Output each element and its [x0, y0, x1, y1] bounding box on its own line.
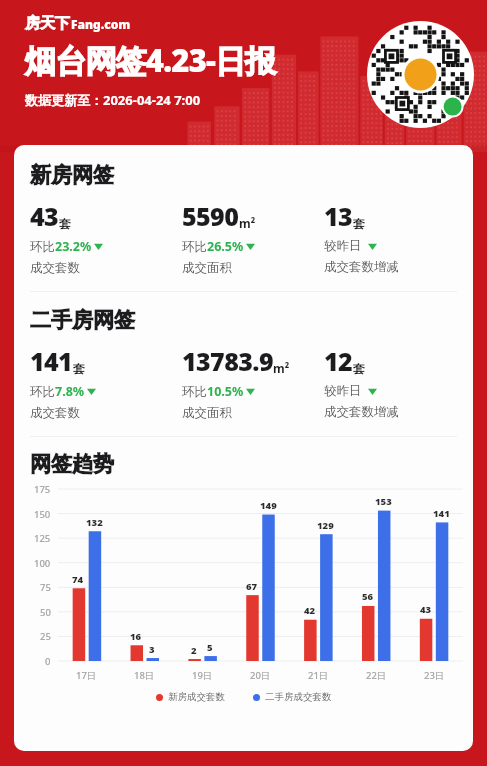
- staticText: 19日: [192, 669, 213, 682]
- staticText: 成交套数增减: [324, 404, 399, 420]
- staticText: 套: [59, 216, 71, 231]
- staticText: 3: [149, 643, 155, 656]
- staticText: 环比: [30, 239, 55, 255]
- staticText: 141: [30, 344, 73, 378]
- staticText: 23日: [424, 669, 445, 682]
- staticText: 42: [304, 604, 316, 617]
- staticText: 网签趋势: [30, 451, 114, 477]
- staticText: 成交套数: [30, 260, 80, 276]
- staticText: 125: [34, 532, 51, 545]
- staticText: 二手房成交套数: [265, 691, 332, 703]
- staticText: 43: [420, 603, 432, 616]
- staticText: 22日: [366, 669, 387, 682]
- staticText: 新房成交套数: [168, 691, 225, 703]
- staticText: 21日: [308, 669, 329, 682]
- staticText: 成交面积: [182, 260, 232, 276]
- staticText: 56: [362, 590, 374, 603]
- staticText: 7.8%: [55, 383, 85, 400]
- button[interactable]: 扫码关注房天下小程序: [367, 21, 474, 128]
- staticText: 烟台网签4.23-日报: [25, 39, 276, 81]
- staticText: 环比: [30, 384, 55, 400]
- staticText: 67: [246, 580, 258, 593]
- button[interactable]: 新房成交套数: [154, 689, 227, 705]
- staticText: 环比: [182, 384, 207, 400]
- staticText: 套: [353, 361, 365, 376]
- staticText: 房天下: [25, 14, 70, 33]
- staticText: 10.5%: [207, 383, 244, 400]
- staticText: 套: [353, 216, 365, 231]
- staticText: 43: [30, 199, 59, 233]
- staticText: 175: [34, 483, 51, 496]
- staticText: 74: [72, 573, 84, 586]
- staticText: 25: [40, 630, 51, 643]
- staticText: 成交套数增减: [324, 259, 399, 275]
- staticText: 16: [130, 630, 142, 643]
- staticText: 132: [86, 516, 103, 529]
- staticText: m²: [273, 360, 290, 376]
- staticText: 5: [207, 641, 213, 654]
- staticText: 13783.9: [182, 344, 273, 378]
- staticText: 75: [40, 581, 51, 594]
- staticText: 23.2%: [55, 238, 92, 255]
- staticText: 129: [317, 519, 334, 532]
- staticText: 141: [433, 507, 450, 520]
- staticText: 20日: [250, 669, 271, 682]
- staticText: 100: [34, 557, 51, 570]
- staticText: 2: [191, 644, 197, 657]
- staticText: 较昨日: [324, 383, 362, 399]
- staticText: 13: [324, 199, 353, 233]
- staticText: 较昨日: [324, 238, 362, 254]
- staticText: 数据更新至：2026-04-24 7:00: [25, 91, 201, 109]
- staticText: 153: [375, 495, 392, 508]
- staticText: 149: [260, 499, 277, 512]
- staticText: 新房网签: [30, 162, 114, 188]
- staticText: 26.5%: [207, 238, 244, 255]
- staticText: 5590: [182, 199, 239, 233]
- staticText: 成交面积: [182, 405, 232, 421]
- staticText: 成交套数: [30, 405, 80, 421]
- staticText: Fang.com: [71, 16, 131, 32]
- staticText: 环比: [182, 239, 207, 255]
- staticText: 套: [73, 361, 85, 376]
- staticText: 50: [40, 606, 51, 619]
- button[interactable]: 二手房成交套数: [251, 689, 334, 705]
- staticText: 0: [45, 655, 51, 668]
- staticText: 二手房网签: [30, 307, 135, 333]
- staticText: 150: [34, 508, 51, 521]
- staticText: 12: [324, 344, 353, 378]
- staticText: 18日: [134, 669, 155, 682]
- staticText: 17日: [76, 669, 97, 682]
- staticText: m²: [239, 215, 256, 231]
